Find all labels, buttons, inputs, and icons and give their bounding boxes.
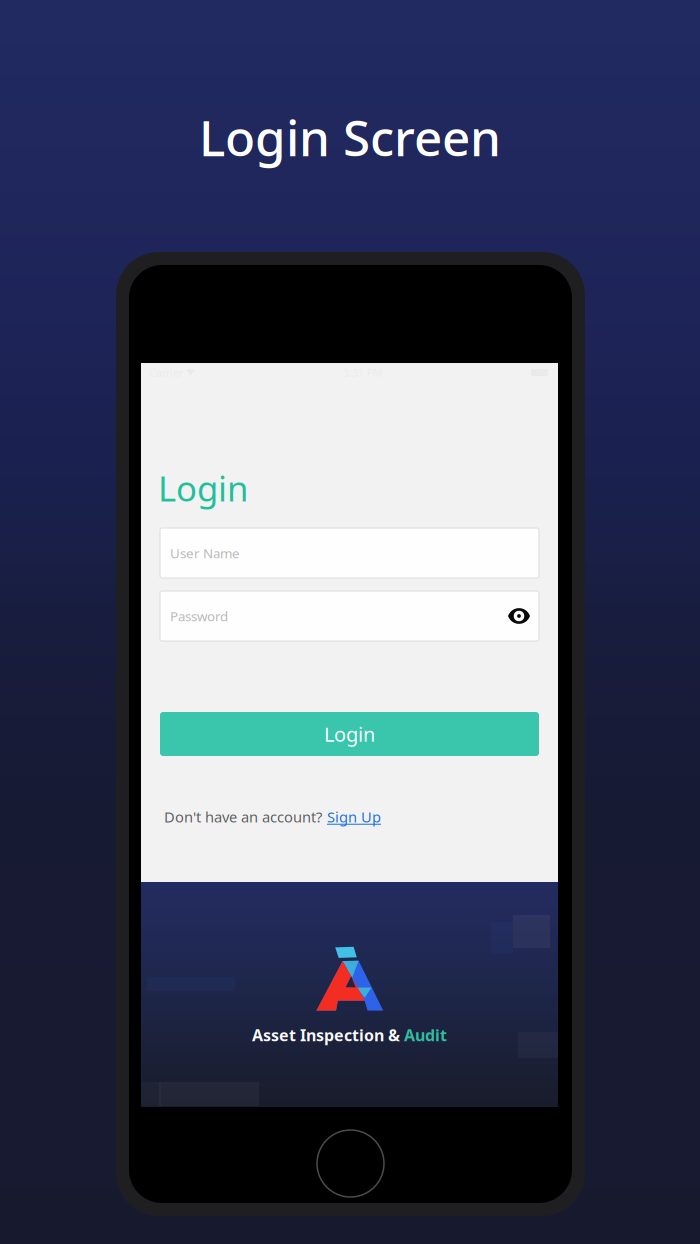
button[interactable]: Sign Up bbox=[327, 807, 381, 826]
staticText: Audit bbox=[404, 1024, 447, 1046]
staticText: Login Screen bbox=[199, 104, 501, 170]
staticText: Asset Inspection & bbox=[252, 1024, 400, 1046]
staticText: Login bbox=[324, 721, 375, 747]
button[interactable]: User Name bbox=[160, 528, 539, 578]
button[interactable]: Password bbox=[160, 591, 539, 641]
staticText: Sign Up bbox=[327, 807, 381, 826]
staticText: Password bbox=[170, 607, 228, 625]
staticText: User Name bbox=[170, 544, 240, 562]
button[interactable]: Login bbox=[160, 712, 539, 756]
staticText: Don't have an account? bbox=[164, 807, 322, 826]
staticText: Login bbox=[158, 465, 248, 511]
